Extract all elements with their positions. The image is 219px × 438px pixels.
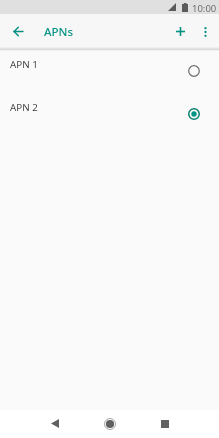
button[interactable]: Home [91,410,129,438]
button[interactable]: APN 2 [0,94,219,137]
button[interactable]: Navigate up [0,14,35,49]
staticText: APNs [44,24,74,40]
button[interactable]: Recent apps [146,410,184,438]
staticText: 10:00 [192,2,217,15]
button[interactable]: More options [194,14,216,49]
button[interactable]: APN 1 [0,51,219,94]
button[interactable]: Back [36,409,74,437]
staticText: APN 1 [10,58,38,71]
staticText: APN 2 [10,101,38,114]
button[interactable]: Add APN [166,14,195,49]
